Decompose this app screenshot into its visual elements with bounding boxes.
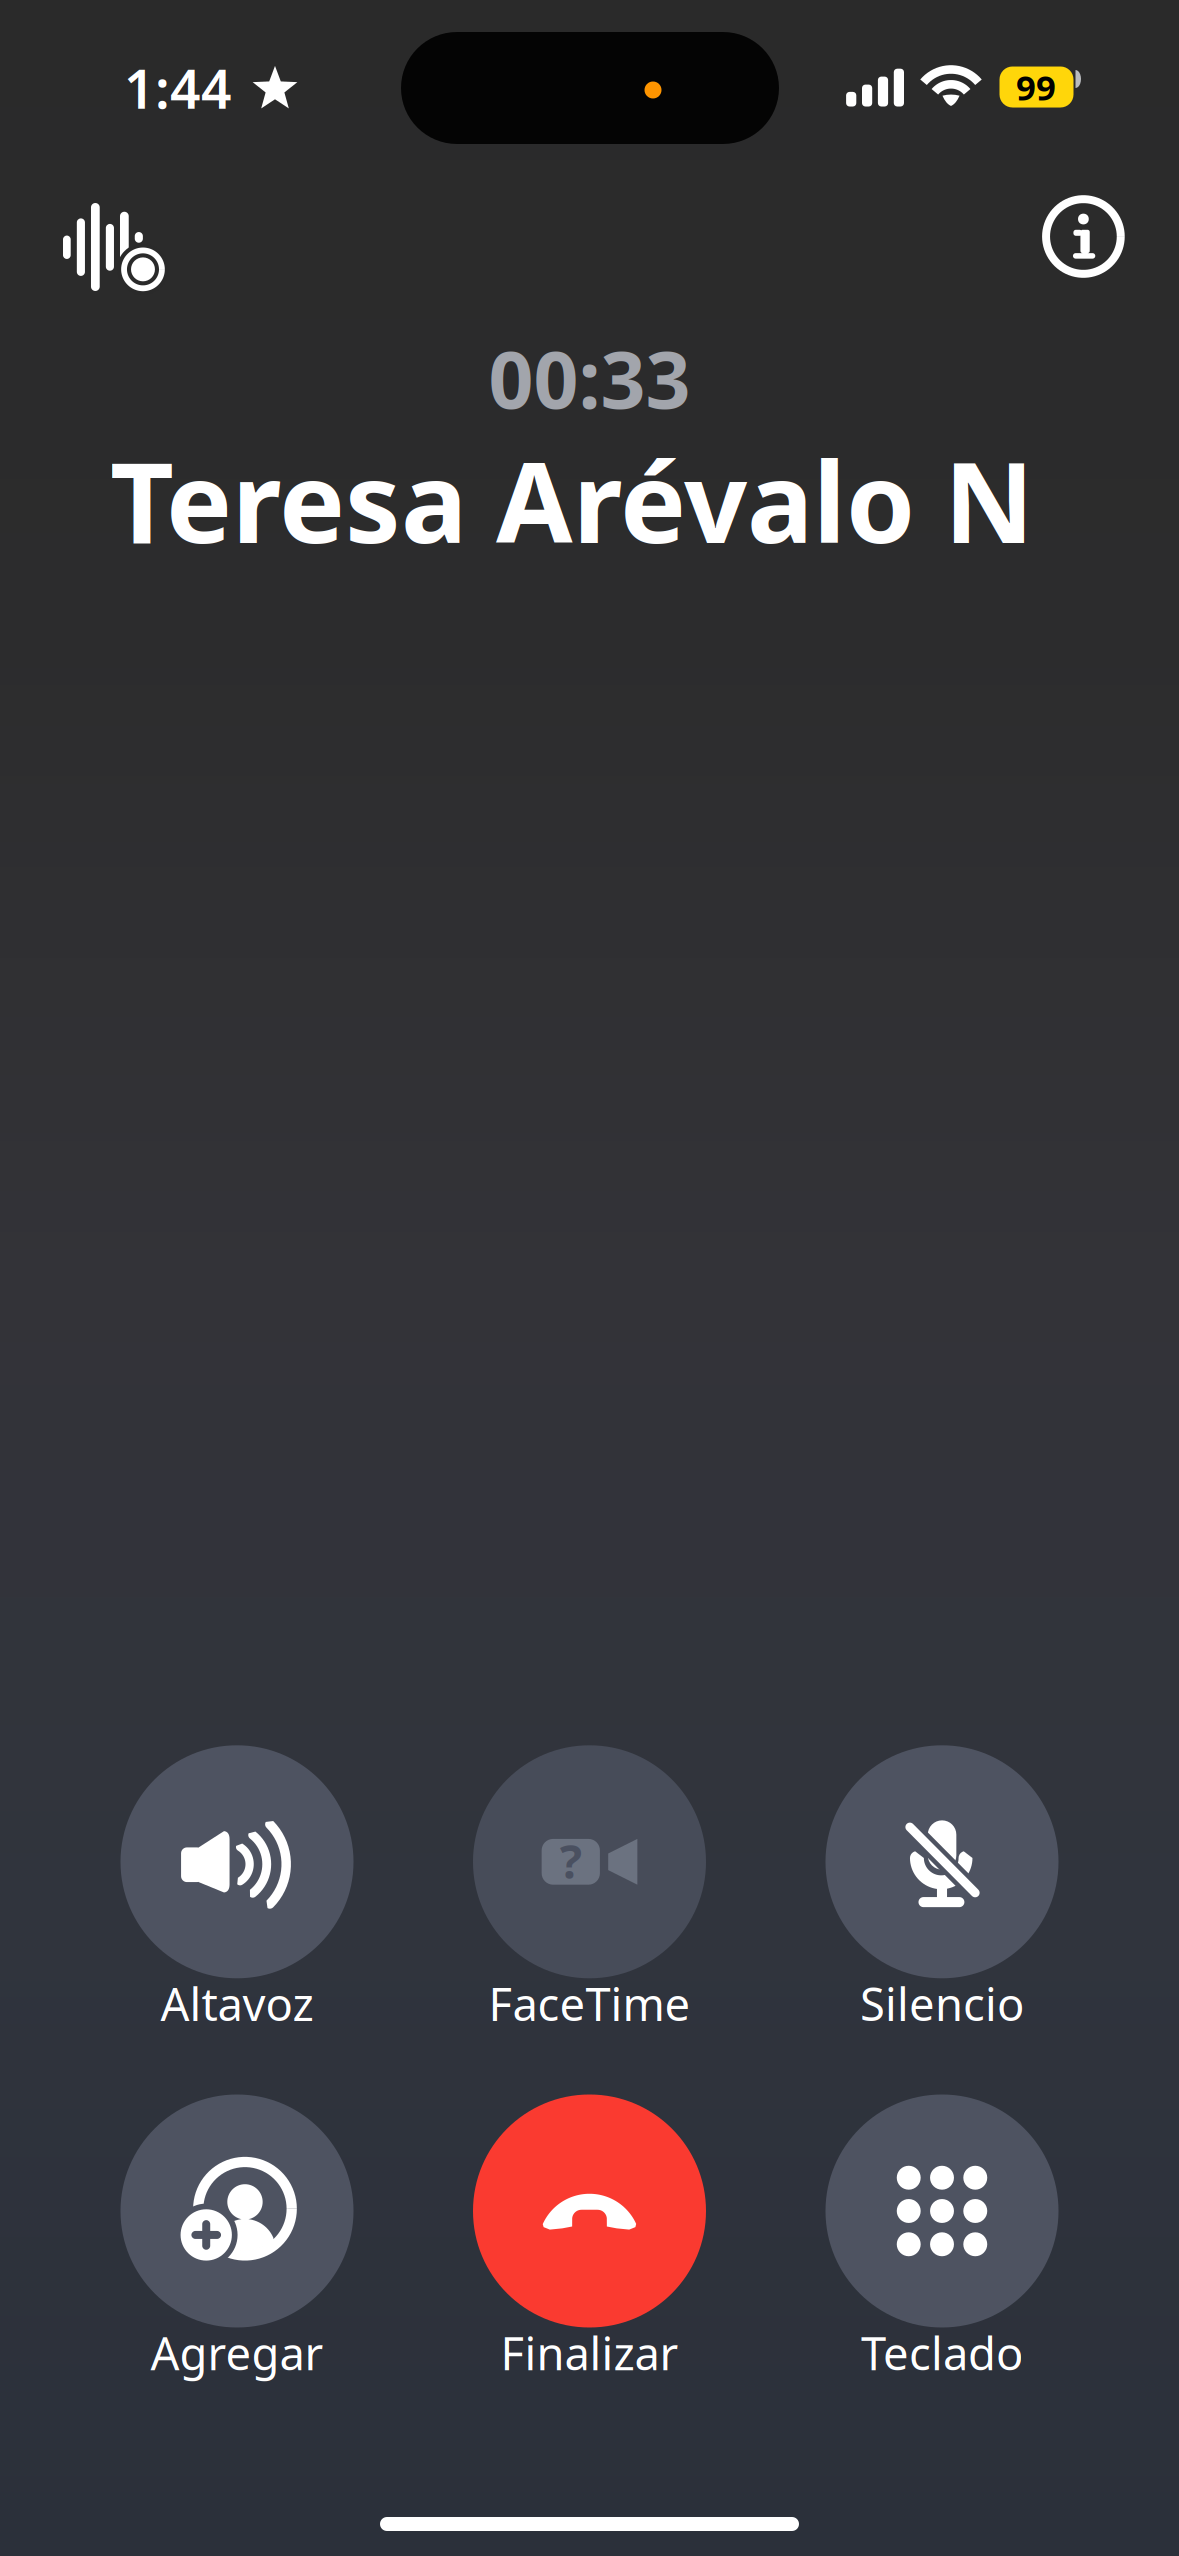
- staticText: Teclado: [861, 2322, 1023, 2383]
- button[interactable]: Información de la llamada: [1008, 161, 1158, 311]
- staticText: ?: [560, 1830, 582, 1892]
- staticText: 00:33: [488, 326, 690, 430]
- button[interactable]: Silencio: [796, 1745, 1088, 2039]
- button[interactable]: Teclado: [796, 2094, 1088, 2389]
- button[interactable]: Grabar llamada: [40, 180, 190, 330]
- button[interactable]: FaceTime: [443, 1745, 735, 2039]
- staticText: 1:44: [124, 53, 232, 123]
- staticText: Teresa Arévalo N: [110, 426, 1034, 573]
- staticText: Finalizar: [500, 2322, 678, 2383]
- staticText: FaceTime: [488, 1973, 690, 2033]
- staticText: Agregar: [150, 2322, 323, 2383]
- button[interactable]: Finalizar: [443, 2094, 735, 2389]
- staticText: Silencio: [860, 1973, 1024, 2033]
- staticText: 99: [1016, 64, 1056, 110]
- button[interactable]: Agregar: [91, 2094, 383, 2389]
- staticText: Altavoz: [160, 1973, 313, 2033]
- button[interactable]: Altavoz: [91, 1745, 383, 2039]
